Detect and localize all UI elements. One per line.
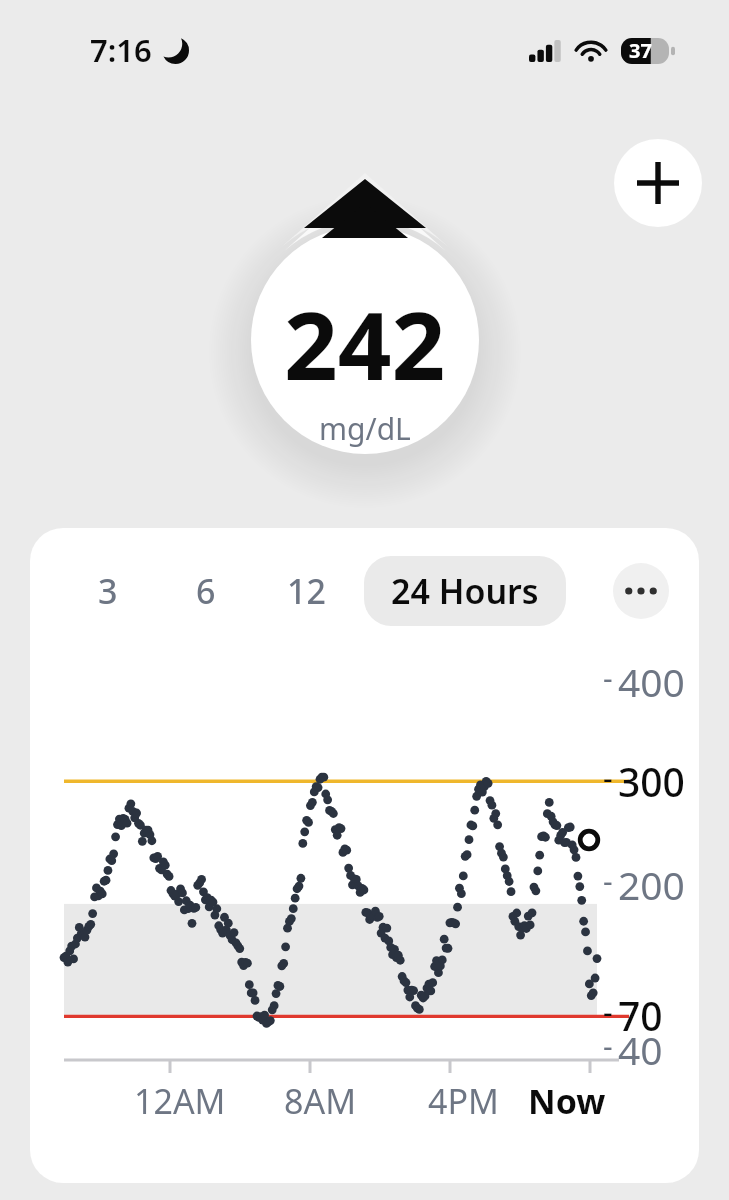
staticText: 12AM xyxy=(134,1078,226,1124)
staticText: Now xyxy=(528,1078,606,1124)
staticText: 70 xyxy=(618,989,663,1042)
staticText: - xyxy=(603,991,613,1032)
staticText: 12 xyxy=(287,568,326,614)
button[interactable]: 3 xyxy=(82,561,134,621)
staticText: - xyxy=(603,757,613,798)
button[interactable]: 6 xyxy=(180,561,232,621)
button[interactable]: 12 xyxy=(274,561,338,621)
staticText: 24 Hours xyxy=(391,568,539,614)
button[interactable]: 24 Hours xyxy=(364,556,566,626)
staticText: 8AM xyxy=(284,1078,357,1124)
staticText: 6 xyxy=(196,568,216,614)
staticText: - xyxy=(603,860,613,901)
staticText: mg/dL xyxy=(319,408,411,449)
button[interactable]: More options xyxy=(613,563,669,619)
staticText: 200 xyxy=(618,858,685,911)
button[interactable]: Add entry xyxy=(614,139,702,227)
staticText: 300 xyxy=(618,755,685,808)
staticText: 40 xyxy=(618,1023,663,1076)
staticText: 3 xyxy=(98,568,118,614)
staticText: - xyxy=(603,657,613,698)
staticText: 37 xyxy=(629,37,652,64)
staticText: 242 xyxy=(284,280,446,408)
staticText: - xyxy=(603,1025,613,1066)
staticText: 400 xyxy=(618,655,685,708)
staticText: 4PM xyxy=(428,1078,499,1124)
staticText: 7:16 xyxy=(90,29,152,71)
